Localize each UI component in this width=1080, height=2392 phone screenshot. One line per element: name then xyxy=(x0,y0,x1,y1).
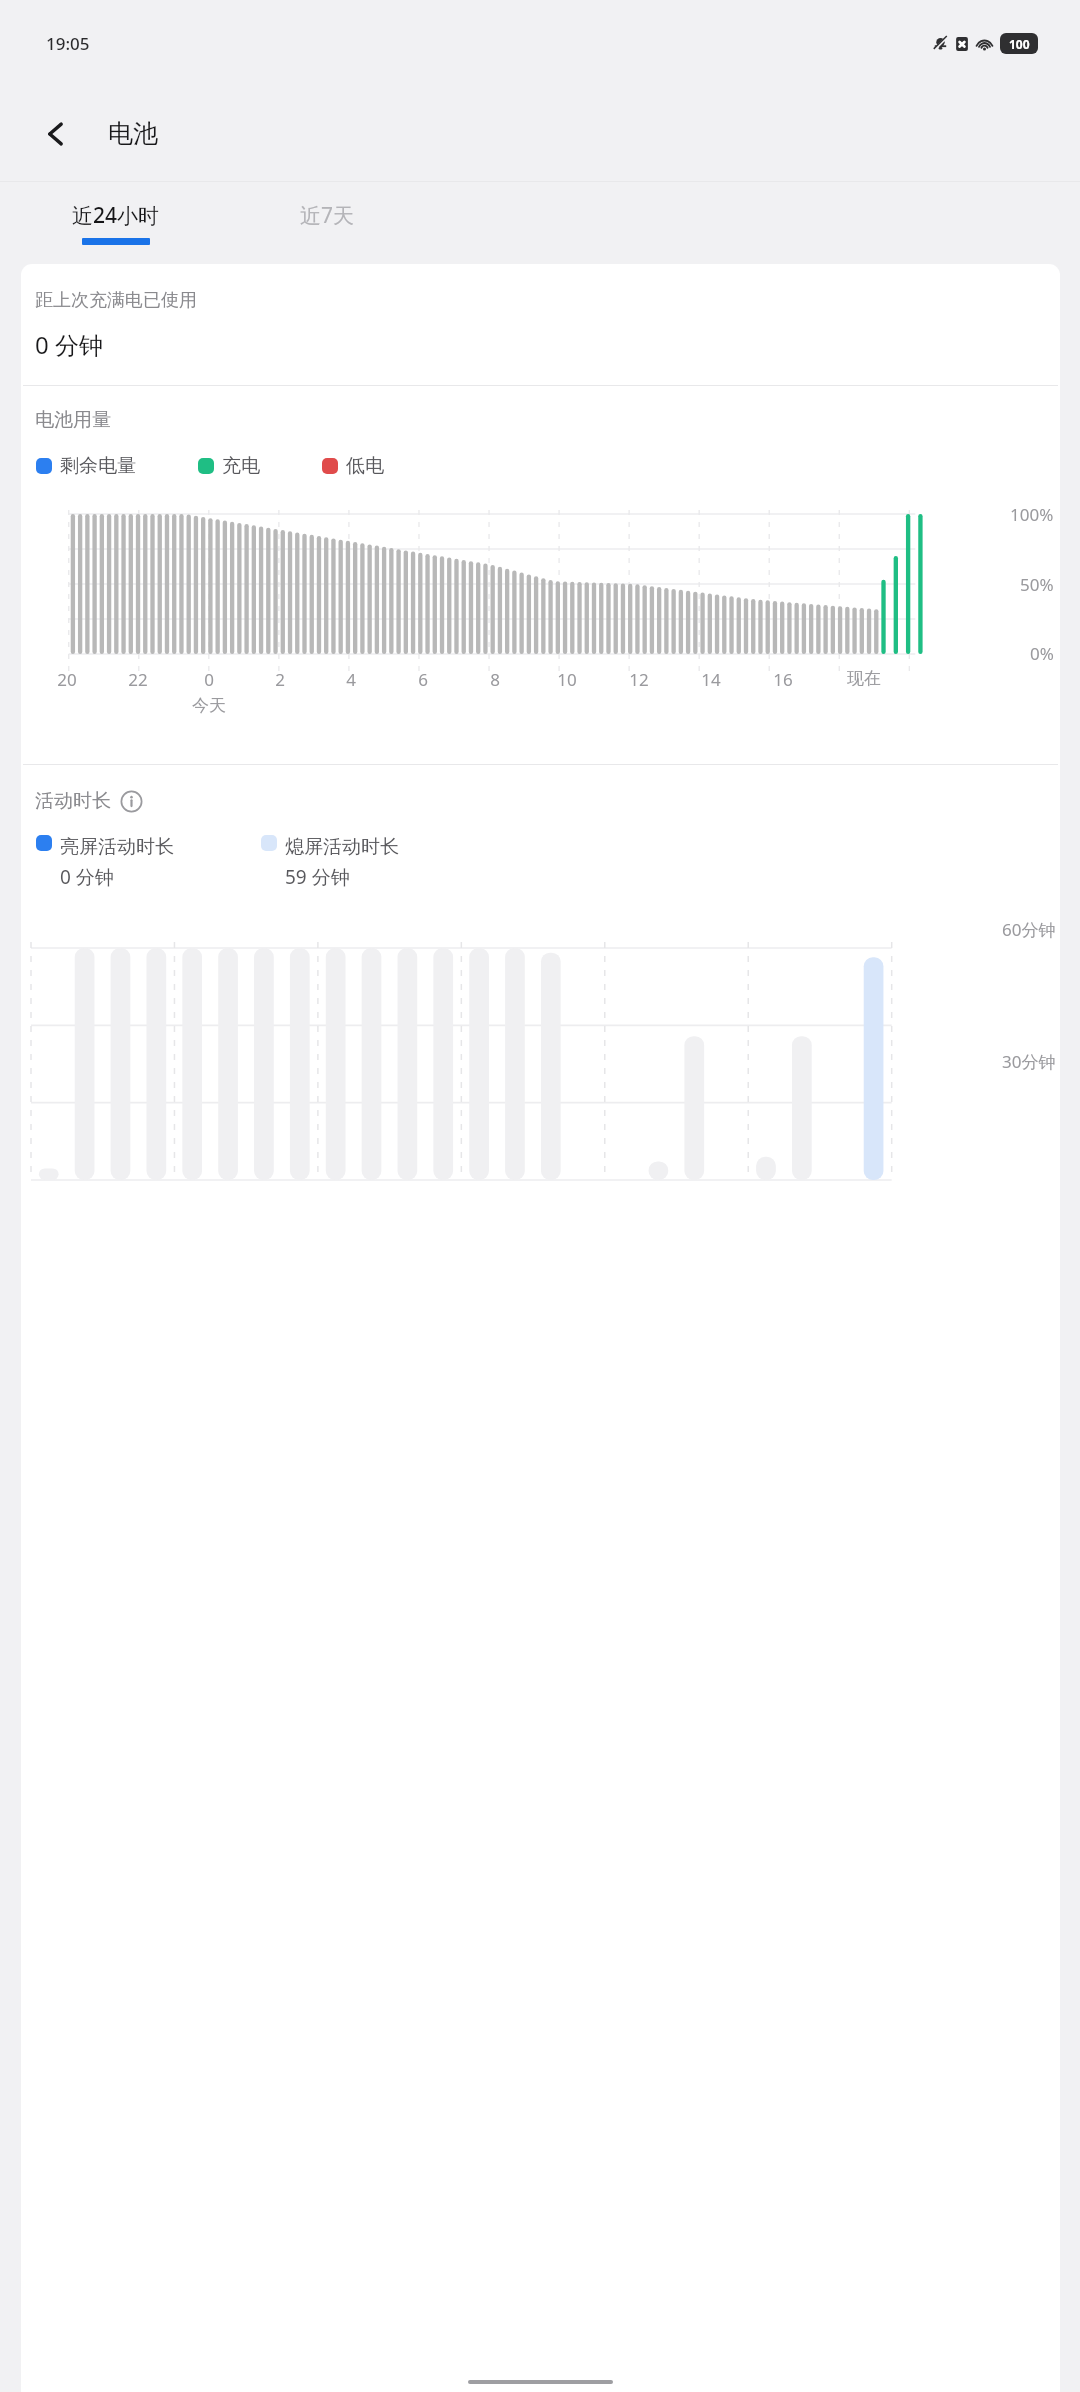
staticText: 12 xyxy=(629,668,649,691)
staticText: 充电 xyxy=(222,454,260,478)
staticText: 14 xyxy=(701,668,721,691)
staticText: 6 xyxy=(418,668,428,691)
staticText: 电池用量 xyxy=(35,408,111,432)
staticText: 8 xyxy=(490,668,500,691)
staticText: 剩余电量 xyxy=(60,454,136,478)
staticText: 电池 xyxy=(108,118,158,149)
staticText: 60分钟 xyxy=(1002,918,1056,941)
staticText: 熄屏活动时长 xyxy=(285,835,399,859)
button[interactable]: Back xyxy=(30,108,82,160)
staticText: 0 分钟 xyxy=(60,864,114,890)
staticText: 59 分钟 xyxy=(285,864,350,890)
staticText: 今天 xyxy=(192,695,226,716)
button[interactable]: 近24小时 xyxy=(72,201,160,245)
staticText: 近24小时 xyxy=(72,201,160,230)
staticText: 16 xyxy=(773,668,793,691)
staticText: 0 xyxy=(204,668,214,691)
staticText: 19:05 xyxy=(46,32,90,55)
button[interactable]: Info xyxy=(120,790,143,813)
staticText: 100 xyxy=(1009,36,1030,52)
staticText: 10 xyxy=(557,668,577,691)
staticText: 距上次充满电已使用 xyxy=(35,289,197,312)
staticText: 低电 xyxy=(346,454,384,478)
staticText: 22 xyxy=(128,668,148,691)
staticText: 0% xyxy=(1030,642,1054,665)
staticText: 2 xyxy=(275,668,285,691)
staticText: 亮屏活动时长 xyxy=(60,835,174,859)
staticText: 20 xyxy=(57,668,77,691)
staticText: 30分钟 xyxy=(1002,1050,1056,1073)
button[interactable]: 近7天 xyxy=(300,201,355,230)
staticText: 4 xyxy=(346,668,356,691)
staticText: 活动时长 xyxy=(35,789,111,813)
staticText: 100% xyxy=(1010,503,1054,526)
staticText: 现在 xyxy=(847,668,881,689)
staticText: 近7天 xyxy=(300,201,355,230)
staticText: 50% xyxy=(1020,573,1054,596)
staticText: 0 分钟 xyxy=(35,328,103,361)
